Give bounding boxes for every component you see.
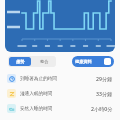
staticText: 29分鐘 [96, 75, 113, 82]
staticText: 2小時0分 [91, 105, 113, 112]
button[interactable]: Sleep stage chart [5, 0, 115, 52]
staticText: 到睡著為止的時間 [20, 76, 57, 82]
staticText: 33分鐘 [96, 90, 113, 97]
button[interactable]: 整合 [32, 56, 56, 67]
staticText: 健康資料 [75, 59, 92, 64]
button[interactable]: 趨勢 [9, 57, 31, 66]
staticText: 趨勢 [16, 59, 25, 64]
staticText: 安然入睡的時間 [20, 106, 53, 112]
button[interactable]: 健康資料 [72, 56, 114, 67]
button[interactable]: 淺通入眠的時間 [0, 86, 120, 101]
staticText: 整合 [40, 59, 49, 64]
button[interactable]: 到睡著為止的時間 [0, 71, 120, 86]
button[interactable]: 安然入睡的時間 [0, 101, 120, 116]
staticText: 淺通入眠的時間 [20, 91, 53, 97]
